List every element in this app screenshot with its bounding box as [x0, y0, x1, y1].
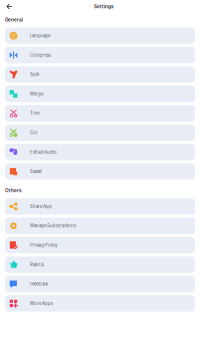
button[interactable]: Language	[5, 27, 195, 44]
button[interactable]: Share App	[5, 198, 195, 215]
staticText: Compress	[30, 52, 51, 58]
staticText: Manage Subscriptions	[30, 223, 76, 228]
staticText: Cut	[30, 130, 37, 135]
staticText: Extract Audio	[30, 149, 57, 155]
staticText: Feedback	[30, 281, 48, 287]
button[interactable]: Extract Audio	[5, 144, 195, 160]
button[interactable]: Manage Subscriptions	[5, 218, 195, 234]
button[interactable]: Saved	[5, 163, 195, 180]
staticText: Saved	[30, 169, 42, 174]
button[interactable]: More Apps	[5, 295, 195, 312]
staticText: Trim	[30, 111, 40, 116]
button[interactable]: Privacy Policy	[5, 237, 195, 253]
staticText: Share App	[30, 204, 52, 209]
staticText: Rate Us	[30, 262, 44, 267]
button[interactable]: Back	[5, 1, 14, 12]
button[interactable]: Feedback	[5, 276, 195, 292]
staticText: Others	[5, 188, 22, 193]
staticText: General	[5, 17, 23, 22]
button[interactable]: Rate Us	[5, 256, 195, 273]
button[interactable]: Compress	[5, 47, 195, 63]
staticText: Split	[30, 72, 39, 77]
staticText: Privacy Policy	[30, 243, 57, 248]
button[interactable]: Merge	[5, 86, 195, 102]
staticText: Merge	[30, 91, 43, 96]
button[interactable]: Cut	[5, 124, 195, 141]
button[interactable]: Split	[5, 66, 195, 83]
staticText: Settings	[94, 4, 114, 9]
button[interactable]: Trim	[5, 105, 195, 121]
staticText: More Apps	[30, 301, 53, 306]
staticText: Language	[30, 33, 50, 38]
